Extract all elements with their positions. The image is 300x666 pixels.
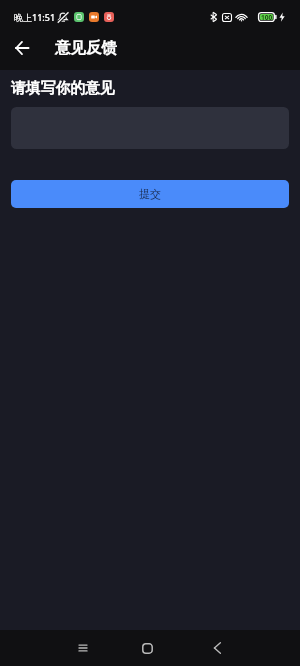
button[interactable]: 返回 [8,34,36,62]
button[interactable]: 最近任务 [67,632,99,664]
button[interactable]: 主屏幕 [131,632,163,664]
staticText: 晚上11:51 [14,11,56,23]
staticText: 意见反馈 [55,38,117,58]
staticText: 100 [261,13,273,22]
button[interactable]: 返回 [201,632,233,664]
button[interactable]: 提交 [11,180,289,208]
staticText: 提交 [139,187,161,201]
staticText: 请填写你的意见 [11,79,115,98]
